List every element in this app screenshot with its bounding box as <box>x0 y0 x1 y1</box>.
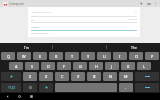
button[interactable]: M <box>119 72 133 81</box>
button[interactable]: N <box>103 72 117 81</box>
button[interactable]: X <box>39 72 53 81</box>
button[interactable]: U <box>97 52 111 60</box>
button[interactable]: G <box>73 62 87 70</box>
staticText: U <box>103 54 106 59</box>
button[interactable]: More options <box>152 0 159 7</box>
staticText: O <box>135 54 138 59</box>
button[interactable]: E <box>33 52 47 60</box>
staticText: S <box>31 64 34 69</box>
button[interactable]: S <box>25 62 39 70</box>
staticText: Q <box>7 54 10 59</box>
staticText: C <box>61 74 64 79</box>
button[interactable] <box>39 83 53 92</box>
staticText: +CC/BCC <box>128 18 137 21</box>
button[interactable]: Back <box>4 93 11 100</box>
button[interactable]: Gmail <box>2 1 8 7</box>
staticText: E <box>39 54 42 59</box>
button[interactable]: B <box>87 72 101 81</box>
button[interactable]: K <box>121 62 135 70</box>
button[interactable]: C <box>55 72 69 81</box>
button[interactable]: H <box>89 62 103 70</box>
button[interactable]: Attach file <box>145 0 152 7</box>
button[interactable]: T <box>65 52 79 60</box>
staticText: J <box>111 64 113 69</box>
button[interactable]: Subject <box>28 23 140 30</box>
button[interactable]: L <box>137 62 151 70</box>
staticText: Y <box>87 54 90 59</box>
staticText: B <box>93 74 96 79</box>
button[interactable] <box>1 72 21 81</box>
button[interactable] <box>135 72 159 81</box>
button[interactable]: P <box>145 52 159 60</box>
staticText: W <box>22 54 26 59</box>
staticText: Compose <box>9 1 25 6</box>
button[interactable]: O <box>129 52 143 60</box>
staticText: A <box>15 64 18 69</box>
staticText: R <box>55 54 58 59</box>
staticText: X <box>45 74 48 79</box>
staticText: me@example.com <box>31 10 52 13</box>
staticText: . <box>125 85 127 90</box>
button[interactable]: R <box>49 52 63 60</box>
staticText: I'm <box>24 45 29 50</box>
button[interactable]: Home <box>16 93 23 100</box>
staticText: To <box>31 18 34 21</box>
staticText: H <box>95 64 98 69</box>
staticText: Compose email <box>31 31 49 34</box>
staticText: N <box>109 74 112 79</box>
button[interactable]: J <box>105 62 119 70</box>
staticText: Z <box>29 74 32 79</box>
staticText: Subject <box>31 25 40 28</box>
staticText: L <box>143 64 145 69</box>
button[interactable]: . <box>119 83 133 92</box>
button[interactable]: A <box>9 62 23 70</box>
button[interactable]: V <box>71 72 85 81</box>
staticText: D <box>47 64 50 69</box>
button[interactable]: Recent apps <box>28 93 35 100</box>
button[interactable]: The <box>107 43 160 51</box>
button[interactable] <box>135 83 159 92</box>
button[interactable]: I <box>113 52 127 60</box>
staticText: P <box>151 54 154 59</box>
staticText: T <box>71 54 74 59</box>
button[interactable]: I'm <box>0 43 52 51</box>
button[interactable]: me@example.com <box>28 7 140 16</box>
button[interactable]: Q <box>1 52 15 60</box>
button[interactable]: Z <box>23 72 37 81</box>
button[interactable] <box>23 83 37 92</box>
staticText: M <box>124 74 128 79</box>
staticText: G <box>79 64 82 69</box>
staticText: F <box>63 64 65 69</box>
button[interactable]: Compose email <box>28 31 140 37</box>
button[interactable]: Send <box>138 0 145 7</box>
button[interactable]: Y <box>81 52 95 60</box>
staticText: The <box>131 45 137 50</box>
staticText: I <box>119 54 121 59</box>
button[interactable]: D <box>41 62 55 70</box>
button[interactable]: ?123 <box>1 83 21 92</box>
button[interactable]: To <box>28 17 140 22</box>
staticText: ?123 <box>8 86 15 90</box>
staticText: V <box>77 74 80 79</box>
staticText: K <box>127 64 130 69</box>
button[interactable]: W <box>17 52 31 60</box>
button[interactable]: F <box>57 62 71 70</box>
